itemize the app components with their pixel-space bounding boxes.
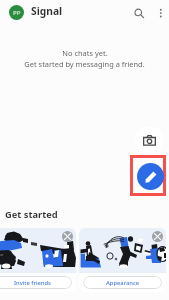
button[interactable]: Appearance — [83, 276, 162, 289]
button[interactable]: New chat — [137, 163, 164, 190]
staticText: Signal — [31, 4, 63, 18]
button[interactable]: More options — [151, 2, 169, 21]
button[interactable]: Dismiss — [152, 231, 163, 242]
staticText: Appearance — [106, 279, 140, 287]
button[interactable]: Invite friends — [0, 276, 72, 289]
staticText: PP — [13, 9, 21, 17]
button[interactable]: Camera — [135, 126, 163, 154]
staticText: Invite friends — [14, 279, 51, 287]
staticText: Get started by messaging a friend. — [24, 59, 145, 69]
staticText: No chats yet. — [62, 48, 108, 58]
staticText: Get started — [5, 208, 58, 221]
button[interactable]: Search — [128, 2, 149, 23]
button[interactable]: Dismiss — [62, 231, 73, 242]
button[interactable]: Profile — [9, 5, 24, 20]
